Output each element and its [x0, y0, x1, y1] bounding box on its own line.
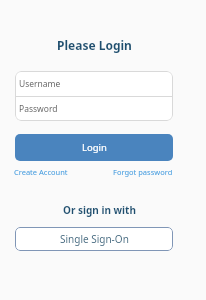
staticText: Please Login: [57, 37, 132, 53]
button[interactable]: Single Sign-On: [15, 227, 173, 251]
staticText: Username: [19, 78, 61, 90]
button[interactable]: Password: [15, 97, 173, 121]
staticText: Forgot password: [113, 167, 173, 177]
button[interactable]: Username: [15, 71, 173, 96]
button[interactable]: Create Account: [14, 167, 68, 177]
staticText: Single Sign-On: [60, 232, 129, 246]
staticText: Create Account: [14, 167, 68, 177]
button[interactable]: Login: [15, 134, 173, 161]
staticText: Password: [19, 103, 58, 115]
button[interactable]: Forgot password: [113, 167, 173, 177]
staticText: Or sign in with: [63, 203, 136, 217]
staticText: Login: [82, 141, 107, 154]
